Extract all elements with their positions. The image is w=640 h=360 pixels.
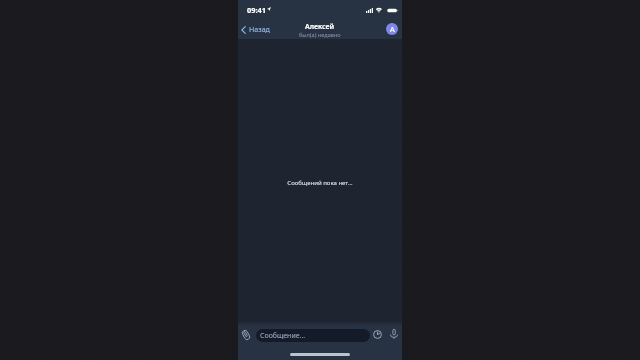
staticText: Сообщение... [260,331,306,341]
button[interactable]: Профиль [386,23,398,35]
staticText: А [390,24,395,34]
button[interactable]: Голосовое сообщение [389,329,399,339]
button[interactable]: Сообщение... [256,329,370,342]
button[interactable]: Таймер [373,330,382,339]
button[interactable]: Прикрепить [241,330,251,340]
staticText: 09:41 [247,5,266,15]
button[interactable]: Назад [241,22,267,37]
staticText: Алексей [305,22,335,32]
staticText: был(а) недавно [299,31,341,39]
staticText: Сообщений пока нет... [287,179,353,187]
staticText: Назад [249,24,270,34]
